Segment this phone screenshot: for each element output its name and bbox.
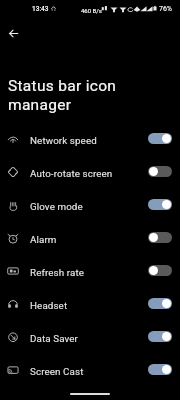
button[interactable]: Off <box>148 166 172 177</box>
button[interactable]: Back <box>1 21 25 45</box>
staticText: 13:43 <box>32 5 49 13</box>
staticText: Headset <box>30 300 68 311</box>
button[interactable]: Screen Cast <box>0 353 180 386</box>
button[interactable]: Off <box>148 265 172 276</box>
button[interactable]: Alarm <box>0 221 180 254</box>
staticText: 76% <box>159 5 172 13</box>
button[interactable]: Headset <box>0 287 180 320</box>
staticText: Status bar icon manager <box>8 77 117 114</box>
staticText: Auto-rotate screen <box>30 168 113 179</box>
button[interactable]: Glove mode <box>0 188 180 221</box>
staticText: 460 B/s <box>81 7 102 14</box>
button[interactable]: Off <box>148 232 172 243</box>
staticText: Data Saver <box>30 333 78 344</box>
button[interactable]: On <box>148 298 172 309</box>
button[interactable]: Auto-rotate screen <box>0 155 180 188</box>
button[interactable]: Data Saver <box>0 320 180 353</box>
button[interactable]: Refresh rate <box>0 254 180 287</box>
button[interactable]: Network speed <box>0 122 180 155</box>
staticText: Glove mode <box>30 201 83 212</box>
staticText: Screen Cast <box>30 366 84 377</box>
staticText: Alarm <box>30 234 57 245</box>
button[interactable]: On <box>148 364 172 375</box>
staticText: Network speed <box>30 135 97 146</box>
staticText: Refresh rate <box>30 267 85 278</box>
button[interactable]: On <box>148 331 172 342</box>
button[interactable]: On <box>148 133 172 144</box>
button[interactable]: On <box>148 199 172 210</box>
